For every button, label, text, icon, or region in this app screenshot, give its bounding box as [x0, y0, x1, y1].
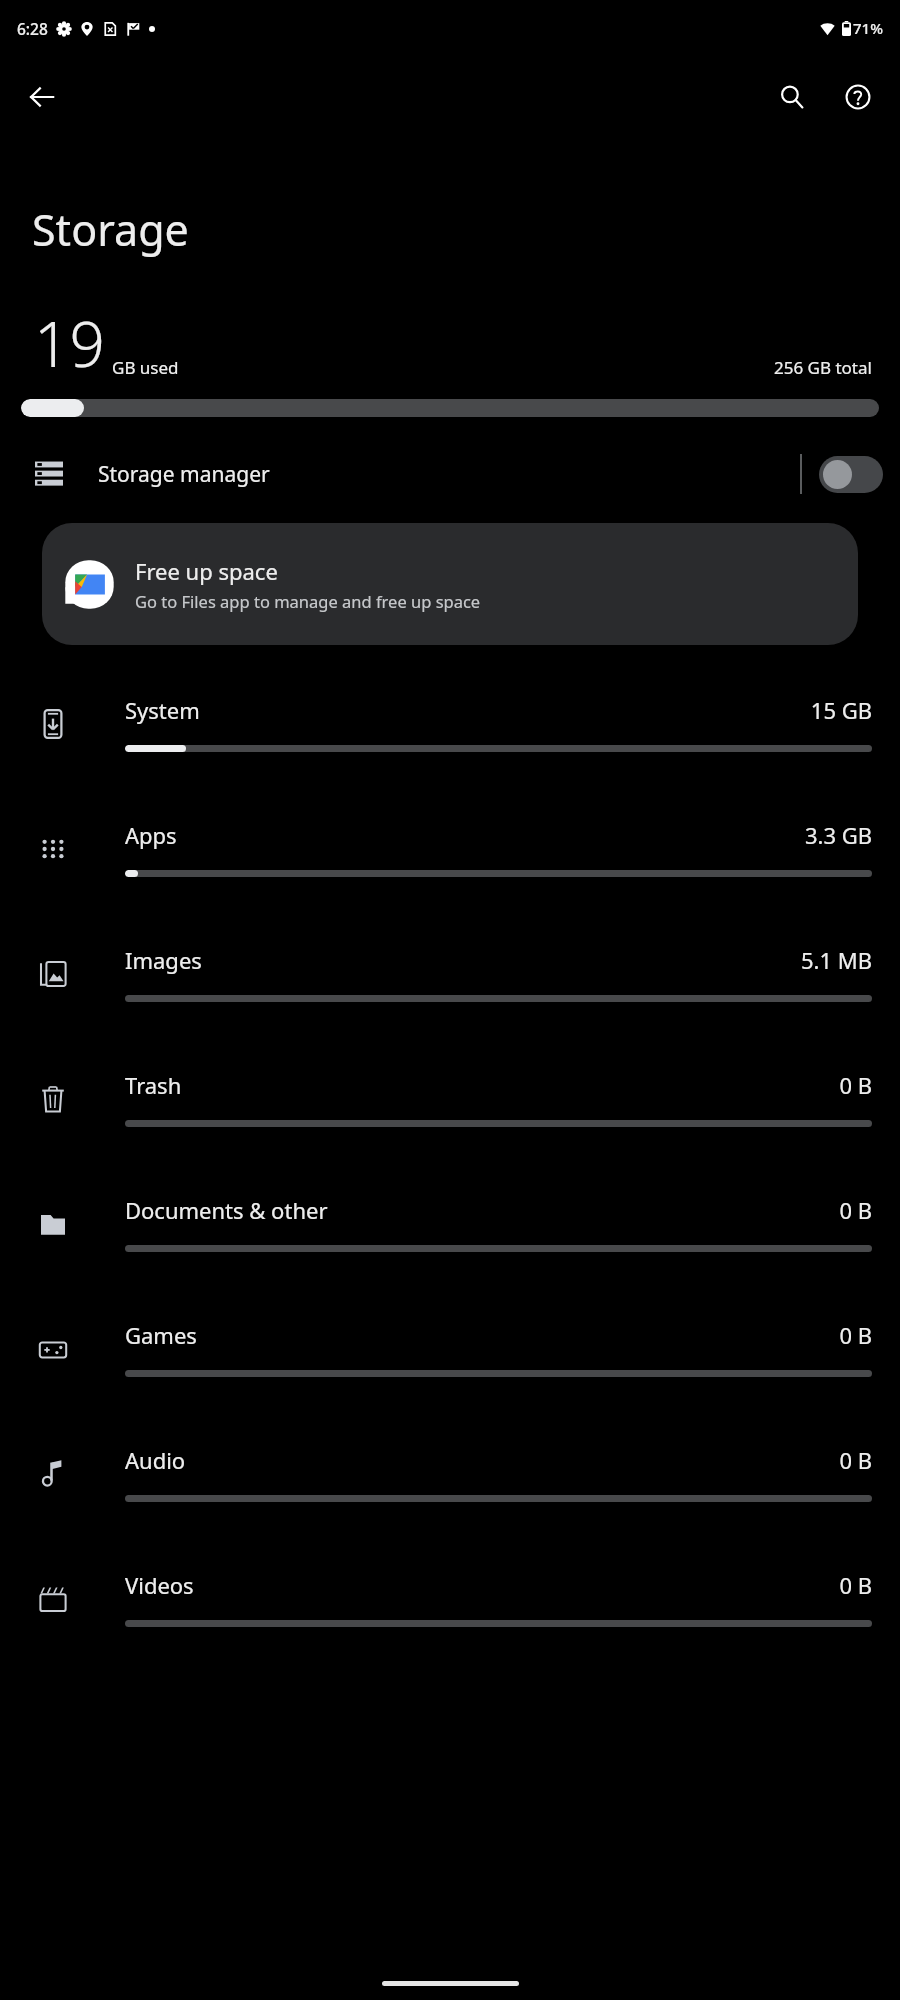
button[interactable]: Storage manager toggle [802, 443, 900, 505]
button[interactable]: Search [764, 69, 820, 125]
staticText: Audio [125, 1445, 186, 1475]
button[interactable]: Apps [0, 786, 900, 911]
button[interactable]: Storage manager [0, 443, 900, 505]
staticText: 5.1 MB [800, 945, 872, 975]
staticText: 6:28 [17, 18, 48, 39]
staticText: 0 B [839, 1445, 872, 1475]
staticText: 0 B [839, 1070, 872, 1100]
button[interactable]: Documents & other [0, 1161, 900, 1286]
staticText: Games [125, 1320, 197, 1350]
button[interactable]: Images [0, 911, 900, 1036]
staticText: Storage [32, 200, 189, 259]
staticText: System [125, 695, 200, 725]
staticText: 15 GB [810, 695, 872, 725]
staticText: Apps [125, 820, 177, 850]
staticText: Free up space [135, 556, 278, 586]
staticText: Trash [125, 1070, 182, 1100]
staticText: 0 B [839, 1320, 872, 1350]
button[interactable]: Trash [0, 1036, 900, 1161]
staticText: Storage manager [98, 460, 270, 489]
button[interactable]: Free up space [42, 523, 858, 645]
staticText: 3.3 GB [804, 820, 872, 850]
staticText: 0 B [839, 1570, 872, 1600]
staticText: GB used [112, 356, 179, 379]
staticText: 256 GB total [774, 356, 872, 379]
button[interactable]: Audio [0, 1411, 900, 1536]
button[interactable]: Back [14, 69, 70, 125]
button[interactable]: Videos [0, 1536, 900, 1661]
button[interactable]: Games [0, 1286, 900, 1411]
staticText: Go to Files app to manage and free up sp… [135, 590, 481, 612]
staticText: 19 [34, 301, 105, 385]
button[interactable]: Help [830, 69, 886, 125]
staticText: 71% [853, 18, 883, 38]
staticText: Documents & other [125, 1195, 328, 1225]
button[interactable]: System [0, 661, 900, 786]
staticText: Images [125, 945, 202, 975]
staticText: Videos [125, 1570, 194, 1600]
staticText: 0 B [839, 1195, 872, 1225]
